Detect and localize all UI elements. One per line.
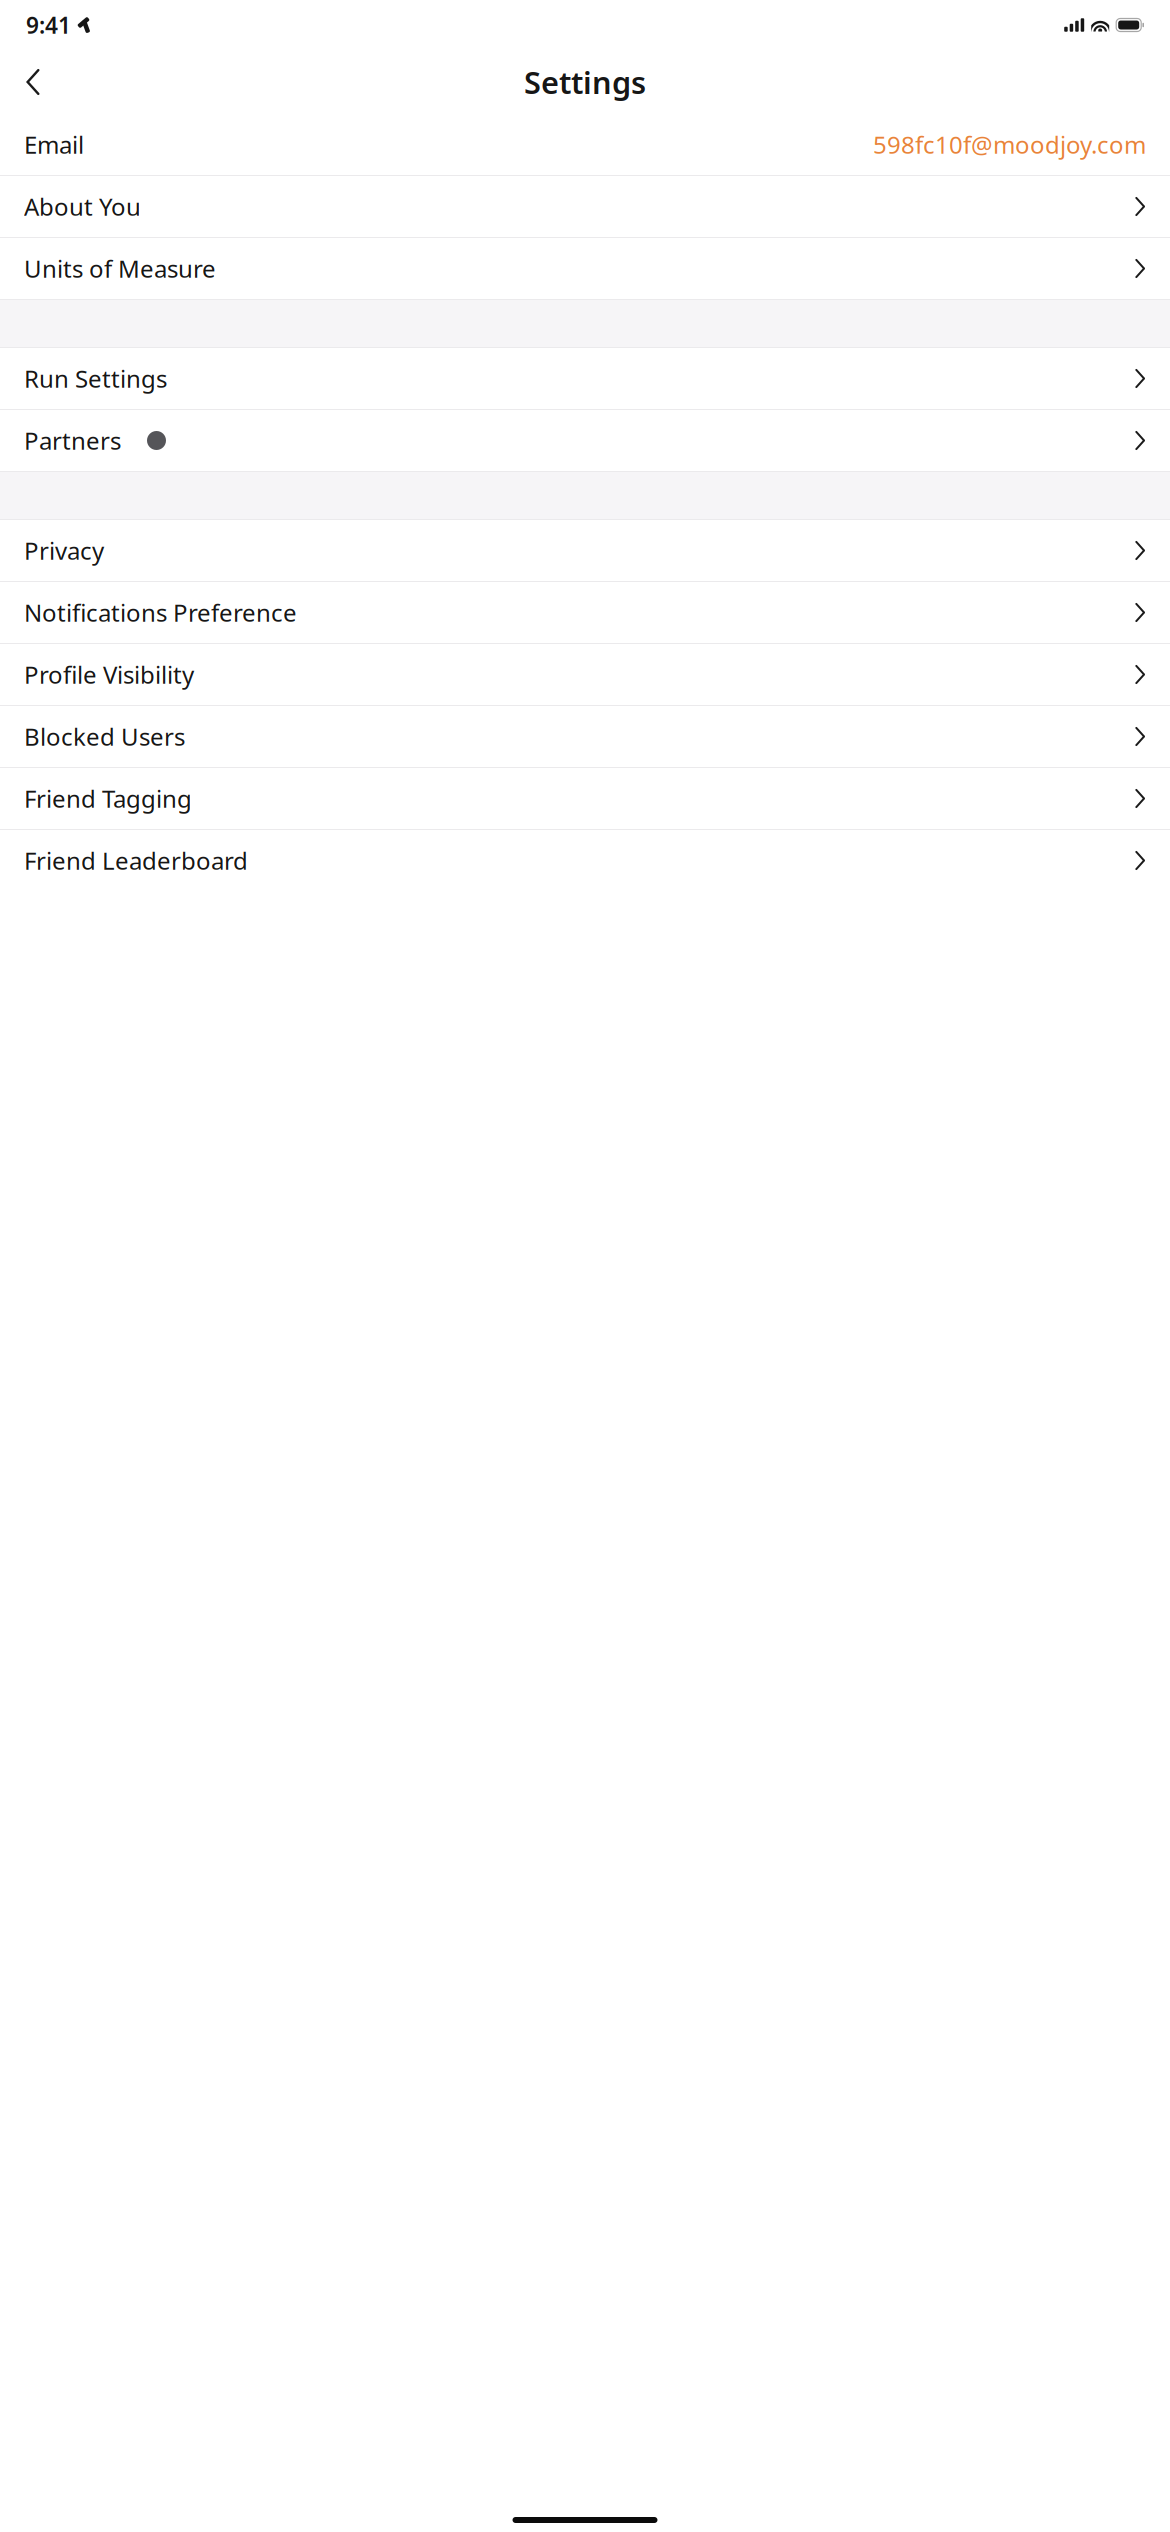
staticText: About You	[24, 191, 141, 222]
button[interactable]: About You	[0, 176, 1170, 237]
staticText: Blocked Users	[24, 721, 185, 752]
button[interactable]: Friend Tagging	[0, 768, 1170, 829]
staticText: Partners	[24, 425, 121, 456]
button[interactable]: Blocked Users	[0, 706, 1170, 767]
staticText: Units of Measure	[24, 253, 216, 284]
staticText: Settings	[524, 62, 646, 102]
button[interactable]: Back	[11, 60, 55, 104]
staticText: Friend Tagging	[24, 783, 192, 814]
button[interactable]: Privacy	[0, 520, 1170, 581]
button[interactable]: Partners	[0, 410, 1170, 471]
button[interactable]: Units of Measure	[0, 238, 1170, 299]
button[interactable]: Notifications Preference	[0, 582, 1170, 643]
staticText: Friend Leaderboard	[24, 845, 248, 876]
staticText: 598fc10f@moodjoy.com	[873, 129, 1146, 160]
staticText: Notifications Preference	[24, 597, 297, 628]
staticText: 9:41	[26, 10, 71, 40]
staticText: Run Settings	[24, 363, 167, 394]
button[interactable]: Friend Leaderboard	[0, 830, 1170, 891]
staticText: Email	[24, 129, 84, 160]
button[interactable]: Profile Visibility	[0, 644, 1170, 705]
staticText: Privacy	[24, 535, 104, 566]
staticText: Profile Visibility	[24, 659, 194, 690]
button[interactable]: Run Settings	[0, 348, 1170, 409]
button[interactable]: Email	[0, 114, 1170, 175]
